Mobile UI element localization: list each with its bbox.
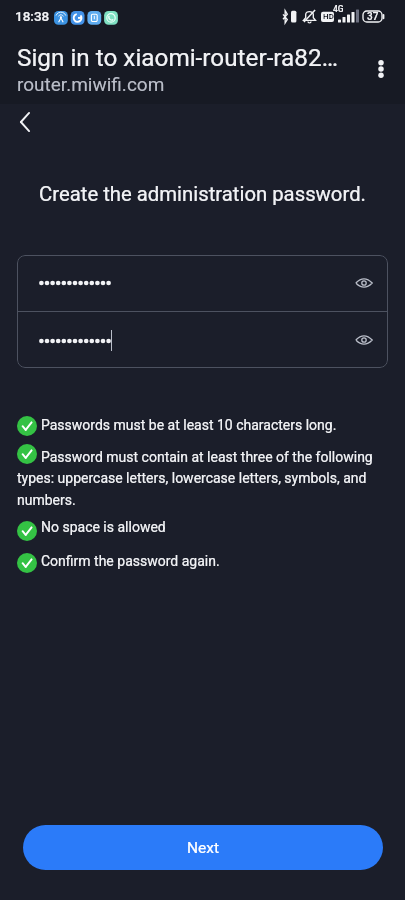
button[interactable]: Show password [344, 320, 384, 360]
button[interactable]: More options [358, 46, 404, 92]
staticText: HD [323, 12, 334, 21]
button[interactable]: Password must contain at least three of … [17, 446, 389, 511]
staticText: Passwords must be at least 10 characters… [17, 417, 389, 433]
staticText: No space is allowed [17, 519, 389, 535]
staticText: Password must contain at least three of … [17, 449, 389, 508]
staticText: Create the administration password. [0, 182, 405, 206]
staticText: 4G [333, 4, 344, 14]
staticText: Next [187, 839, 220, 857]
button[interactable]: Back [3, 100, 47, 144]
staticText: Confirm the password again. [17, 553, 389, 569]
staticText: Sign in to xiaomi-router-ra82… [17, 43, 338, 71]
button[interactable]: Next [23, 825, 383, 870]
button[interactable]: Show password [17, 312, 388, 368]
staticText: 18:38 [15, 8, 50, 24]
button[interactable]: Show password [344, 263, 384, 303]
button[interactable]: Confirm the password again. [17, 550, 389, 572]
button[interactable]: Passwords must be at least 10 characters… [17, 414, 389, 436]
staticText: router.miwifi.com [17, 73, 165, 95]
button[interactable]: No space is allowed [17, 516, 389, 538]
button[interactable]: Show password [17, 255, 388, 311]
staticText: 37 [367, 11, 379, 23]
